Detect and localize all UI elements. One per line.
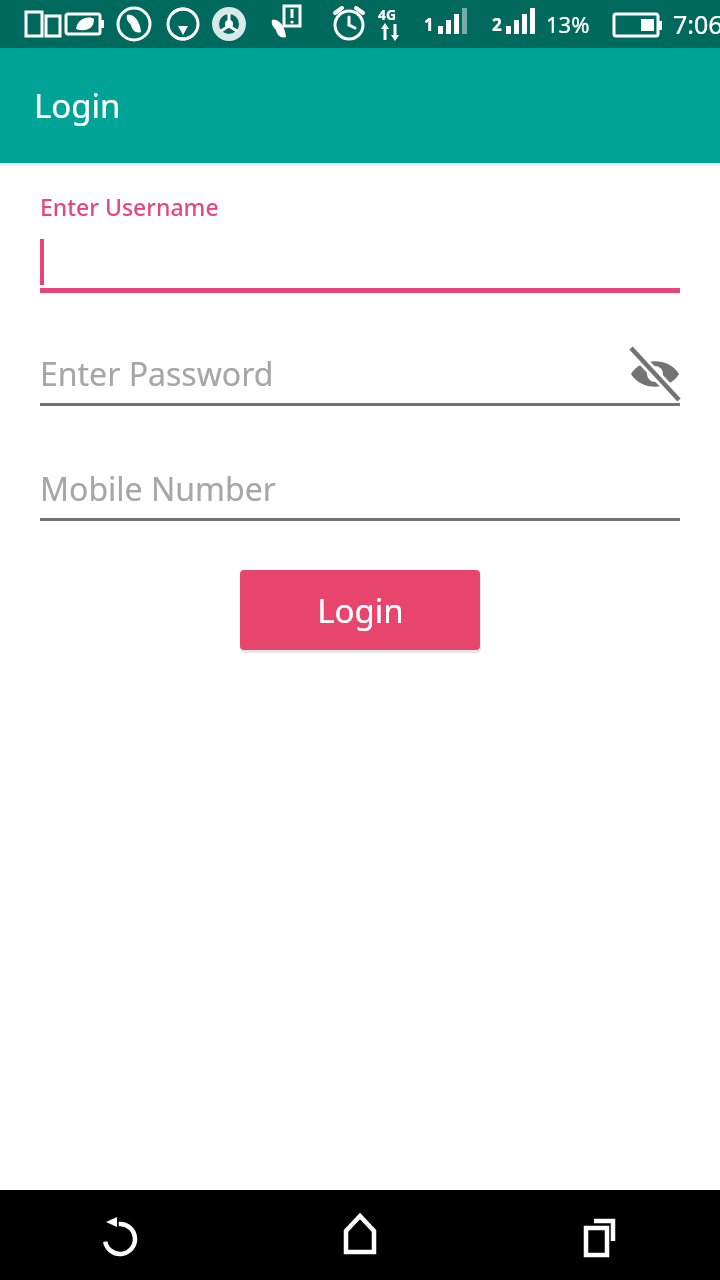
button[interactable]: Login	[240, 570, 480, 650]
button[interactable]: Toggle password visibility	[628, 347, 682, 401]
button[interactable]: Mobile Number	[40, 463, 680, 523]
button[interactable]: Enter Username	[40, 191, 680, 331]
staticText: Login	[317, 588, 404, 633]
button[interactable]: Home	[240, 1190, 480, 1280]
staticText: Enter Password	[40, 352, 274, 396]
staticText: Mobile Number	[40, 467, 276, 511]
staticText: 1	[424, 13, 434, 36]
button[interactable]: Recent apps	[480, 1190, 720, 1280]
staticText: 7:06	[673, 7, 720, 41]
button[interactable]: Enter Password	[40, 348, 680, 408]
staticText: Login	[34, 83, 121, 128]
staticText: 13%	[546, 9, 590, 39]
button[interactable]: Back	[0, 1190, 240, 1280]
staticText: 4G	[378, 5, 397, 24]
staticText: 2	[492, 13, 502, 36]
staticText: Enter Username	[40, 191, 219, 222]
